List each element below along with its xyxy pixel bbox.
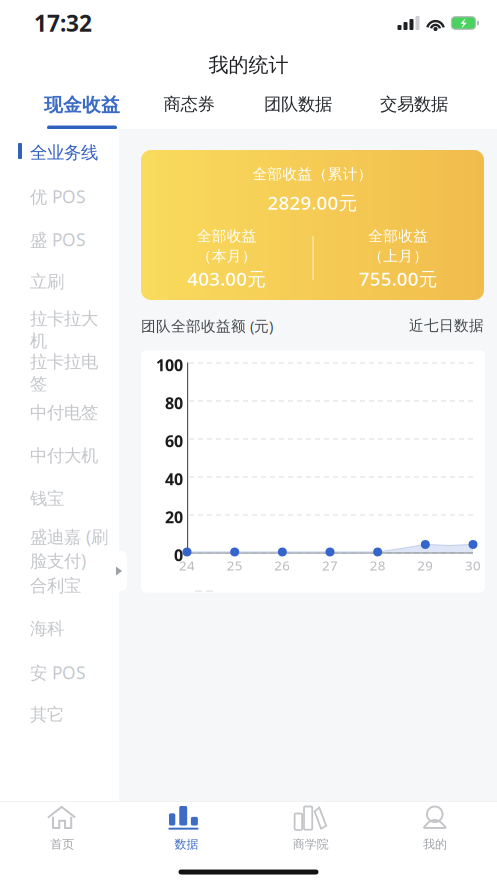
button[interactable]: 团队数据 <box>246 83 350 129</box>
staticText: 全部收益（累计） <box>252 165 372 183</box>
staticText: 团队全部收益额 (元) <box>141 316 273 335</box>
staticText: 60 <box>165 430 183 452</box>
staticText: 全业务线 <box>30 142 98 163</box>
staticText: 近七日数据 <box>409 317 484 335</box>
staticText: 合利宝 <box>30 575 81 596</box>
staticText: 25 <box>227 556 243 574</box>
staticText: 立刷 <box>30 271 64 292</box>
button[interactable]: 商态券 <box>137 83 241 129</box>
staticText: 80 <box>165 392 183 414</box>
staticText: 29 <box>417 556 433 574</box>
staticText: 安 POS <box>30 661 86 684</box>
staticText: 全部收益 <box>368 227 428 245</box>
button[interactable]: 拉卡拉电 <box>0 351 119 395</box>
button[interactable]: 安 POS <box>0 661 119 684</box>
staticText: 40 <box>165 468 183 490</box>
staticText: 团队数据 <box>264 93 332 115</box>
staticText: 海科 <box>30 618 64 639</box>
button[interactable]: 盛迪嘉 (刷 <box>0 525 119 572</box>
staticText: 拉卡拉电 <box>30 351 98 372</box>
staticText: 盛 POS <box>30 228 86 251</box>
staticText: 数据 <box>174 837 198 852</box>
staticText: 全部收益 <box>197 227 257 245</box>
button[interactable]: 中付电签 <box>0 402 119 423</box>
button[interactable]: 优 POS <box>0 185 119 208</box>
staticText: 403.00元 <box>187 266 266 291</box>
button[interactable]: 盛 POS <box>0 228 119 251</box>
staticText: 我的 <box>423 837 447 852</box>
staticText: 中付大机 <box>30 445 98 466</box>
staticText: 钱宝 <box>30 488 64 509</box>
button[interactable]: 数据 <box>124 801 248 861</box>
staticText: 我的统计 <box>208 53 288 77</box>
button[interactable]: 现金收益 <box>30 83 134 129</box>
staticText: 交易数据 <box>380 93 448 115</box>
staticText: 商学院 <box>293 837 329 852</box>
staticText: 盛迪嘉 (刷 <box>30 525 108 548</box>
button[interactable]: 全业务线 <box>0 142 119 163</box>
staticText: 中付电签 <box>30 402 98 423</box>
button[interactable]: 商学院 <box>248 801 373 861</box>
button[interactable]: 拉卡拉大 <box>0 308 119 352</box>
staticText: 26 <box>274 556 290 574</box>
staticText: 商态券 <box>163 93 214 115</box>
staticText: 0 <box>174 544 183 566</box>
staticText: 20 <box>165 506 183 528</box>
button[interactable]: 其它 <box>0 704 119 725</box>
button[interactable]: 海科 <box>0 618 119 639</box>
staticText: 17:32 <box>34 8 92 38</box>
staticText: （本月） <box>197 247 257 265</box>
button[interactable]: 中付大机 <box>0 445 119 466</box>
staticText: 签 <box>30 373 47 395</box>
staticText: 2829.00元 <box>267 190 357 215</box>
staticText: 其它 <box>30 704 64 725</box>
button[interactable]: 立刷 <box>0 271 119 292</box>
staticText: 28 <box>370 556 386 574</box>
staticText: 优 POS <box>30 185 86 208</box>
button[interactable]: 合利宝 <box>0 575 119 596</box>
staticText: 脸支付) <box>30 549 86 572</box>
staticText: （上月） <box>368 247 428 265</box>
staticText: 24 <box>179 556 195 574</box>
button[interactable]: 交易数据 <box>362 83 466 129</box>
button[interactable]: 钱宝 <box>0 488 119 509</box>
button[interactable]: 我的 <box>373 801 497 861</box>
staticText: 现金收益 <box>44 93 120 116</box>
staticText: 首页 <box>50 837 74 852</box>
staticText: 拉卡拉大 <box>30 308 98 329</box>
button[interactable]: Expand sidebar <box>111 551 127 591</box>
staticText: 100 <box>156 354 183 376</box>
staticText: 30 <box>465 556 481 574</box>
staticText: 27 <box>322 556 338 574</box>
staticText: 755.00元 <box>359 266 438 291</box>
button[interactable]: 首页 <box>0 801 124 861</box>
staticText: 机 <box>30 330 47 352</box>
